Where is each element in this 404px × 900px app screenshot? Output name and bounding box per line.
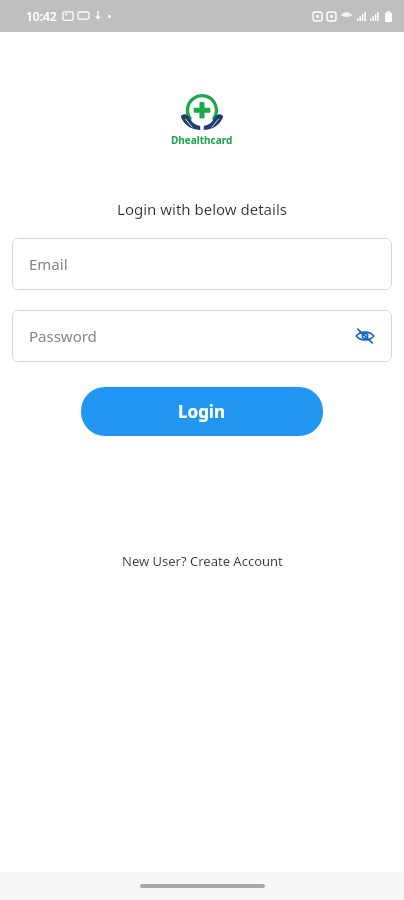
- staticText: Login: [178, 400, 226, 423]
- staticText: 10:42: [26, 8, 57, 24]
- button[interactable]: Email: [12, 238, 392, 290]
- staticText: Login with below details: [0, 199, 404, 219]
- button[interactable]: Login: [81, 387, 323, 436]
- staticText: New User? Create Account: [122, 552, 283, 570]
- button[interactable]: Show password: [350, 321, 380, 351]
- button[interactable]: Password: [12, 310, 392, 362]
- staticText: Email: [29, 254, 68, 274]
- staticText: Dhealthcard: [171, 133, 233, 147]
- staticText: Password: [29, 326, 97, 346]
- button[interactable]: New User? Create Account: [110, 546, 295, 576]
